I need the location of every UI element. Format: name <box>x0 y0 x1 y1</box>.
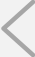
button[interactable]: Back <box>0 0 35 57</box>
